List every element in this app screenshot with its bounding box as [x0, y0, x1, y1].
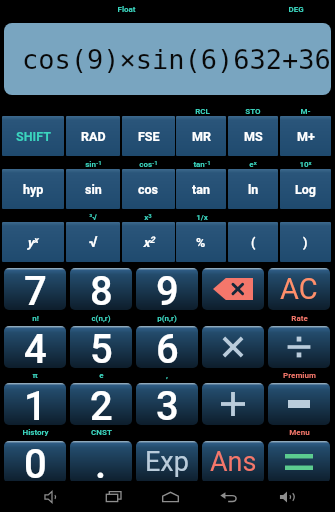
staticText: CNST	[91, 428, 112, 437]
button[interactable]: tan	[176, 169, 226, 209]
button[interactable]: x2	[122, 222, 175, 262]
button[interactable]: 3	[136, 383, 198, 425]
staticText: √	[89, 233, 98, 251]
staticText: Log	[295, 182, 316, 197]
staticText: π	[32, 371, 38, 380]
button[interactable]: 5	[70, 326, 132, 368]
staticText: SHIFT	[16, 129, 51, 144]
button[interactable]: Multiply	[202, 326, 264, 368]
staticText: Float	[117, 5, 136, 14]
button[interactable]: (	[228, 222, 278, 262]
button[interactable]: Volume up	[263, 481, 311, 512]
staticText: 3	[156, 383, 179, 425]
staticText: 6	[156, 326, 179, 368]
staticText: M+	[297, 129, 315, 144]
button[interactable]: yx	[2, 222, 64, 262]
staticText: RCL	[195, 107, 210, 116]
button[interactable]: sin	[66, 169, 120, 209]
staticText: Exp	[145, 446, 189, 478]
staticText: sin	[85, 182, 102, 197]
staticText: 8	[90, 268, 113, 310]
button[interactable]: Exp	[136, 441, 198, 483]
staticText: 5	[90, 326, 113, 368]
button[interactable]: Equals	[268, 441, 330, 483]
button[interactable]: 0	[4, 441, 66, 483]
button[interactable]: Back	[204, 481, 252, 512]
button[interactable]: cos	[122, 169, 175, 209]
staticText: ln	[248, 182, 259, 197]
button[interactable]: ln	[228, 169, 278, 209]
staticText: ,	[166, 371, 168, 380]
staticText: .	[95, 441, 107, 483]
staticText: 2	[90, 383, 113, 425]
staticText: History	[22, 428, 49, 437]
staticText: tan	[192, 182, 210, 197]
staticText: x3	[144, 212, 152, 222]
staticText: 4	[24, 326, 47, 368]
button[interactable]: cos(9)×sin(6)632+36	[4, 23, 331, 95]
staticText: c(n,r)	[91, 314, 111, 323]
staticText: 1	[24, 383, 47, 425]
staticText: cos(9)×sin(6)632+36	[22, 44, 331, 75]
staticText: x2	[143, 235, 155, 250]
button[interactable]: Plus	[202, 383, 264, 425]
staticText: 10x	[299, 159, 312, 169]
button[interactable]: FSE	[122, 116, 175, 156]
button[interactable]: Minus	[268, 383, 330, 425]
staticText: p(n,r)	[157, 314, 177, 323]
staticText: Rate	[291, 314, 308, 323]
button[interactable]: Volume down	[28, 481, 76, 512]
button[interactable]: SHIFT	[2, 116, 64, 156]
staticText: )	[303, 235, 308, 250]
button[interactable]: 1	[4, 383, 66, 425]
button[interactable]: 2	[70, 383, 132, 425]
staticText: cos-1	[139, 159, 158, 169]
staticText: RAD	[81, 129, 106, 144]
button[interactable]: 7	[4, 268, 66, 310]
staticText: 7	[24, 268, 47, 310]
staticText: Ans	[210, 446, 257, 478]
staticText: 0	[24, 441, 47, 483]
staticText: sin-1	[85, 159, 102, 169]
button[interactable]: MR	[176, 116, 226, 156]
button[interactable]: Log	[280, 169, 331, 209]
button[interactable]: √	[66, 222, 120, 262]
button[interactable]: Home	[146, 481, 194, 512]
button[interactable]: AC	[268, 268, 330, 310]
staticText: n!	[32, 314, 39, 323]
staticText: e	[99, 371, 104, 380]
staticText: 1/x	[196, 213, 208, 222]
staticText: STO	[245, 107, 261, 116]
button[interactable]: Backspace	[202, 268, 264, 310]
button[interactable]: 4	[4, 326, 66, 368]
button[interactable]: hyp	[2, 169, 64, 209]
staticText: 9	[156, 268, 179, 310]
staticText: Menu	[289, 428, 310, 437]
staticText: (	[251, 235, 256, 250]
staticText: cos	[138, 182, 159, 197]
button[interactable]: %	[176, 222, 226, 262]
staticText: MR	[192, 129, 211, 144]
button[interactable]: M+	[280, 116, 331, 156]
button[interactable]: 6	[136, 326, 198, 368]
staticText: FSE	[138, 129, 160, 144]
button[interactable]: )	[280, 222, 331, 262]
button[interactable]: MS	[228, 116, 278, 156]
staticText: Premium	[283, 371, 316, 380]
button[interactable]: Divide	[268, 326, 330, 368]
staticText: MS	[244, 129, 263, 144]
staticText: ³√	[89, 213, 97, 222]
button[interactable]: .	[70, 441, 132, 483]
staticText: DEG	[288, 5, 304, 14]
staticText: M-	[300, 107, 311, 116]
button[interactable]: Recent apps	[89, 481, 137, 512]
button[interactable]: RAD	[66, 116, 120, 156]
staticText: AC	[280, 272, 318, 306]
staticText: yx	[27, 235, 39, 250]
staticText: %	[196, 235, 206, 250]
staticText: hyp	[23, 182, 44, 197]
button[interactable]: Ans	[202, 441, 264, 483]
button[interactable]: 8	[70, 268, 132, 310]
button[interactable]: 9	[136, 268, 198, 310]
staticText: ex	[249, 159, 257, 169]
